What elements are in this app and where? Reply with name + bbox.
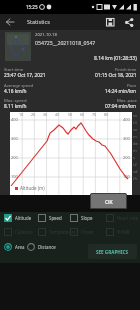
staticText: m: [133, 148, 137, 153]
staticText: 14:24 min/km: [105, 88, 137, 95]
button[interactable]: Altitude: [4, 214, 32, 222]
staticText: 10: [19, 112, 24, 117]
staticText: OK: [105, 198, 113, 205]
button[interactable]: %HRR: [106, 228, 130, 236]
staticText: 20: [31, 112, 36, 117]
staticText: Statistics: [27, 18, 50, 25]
button[interactable]: Distance: [27, 243, 56, 251]
button[interactable]: [125, 18, 134, 27]
staticText: Distance: [38, 244, 56, 250]
staticText: 400: [11, 117, 18, 122]
staticText: 70: [92, 112, 97, 117]
staticText: Finish time: [115, 67, 137, 73]
button[interactable]: Area: [4, 243, 25, 251]
button[interactable]: Power: [70, 228, 94, 236]
staticText: Cadence: [15, 229, 33, 235]
staticText: 100: [11, 174, 18, 179]
staticText: /h: [133, 176, 137, 181]
staticText: Slope: [81, 215, 93, 221]
staticText: se: [133, 127, 138, 132]
staticText: 40: [55, 112, 60, 117]
staticText: t2: [133, 162, 137, 167]
staticText: Pace: [127, 83, 137, 89]
staticText: 15:25: [26, 4, 38, 10]
staticText: 01:15 Oct 18, 2021: [95, 72, 137, 79]
button[interactable]: Cadence: [4, 228, 33, 236]
staticText: ss: [133, 113, 137, 118]
staticText: Altitude: [15, 215, 32, 221]
staticText: 60: [80, 112, 85, 117]
staticText: 400: [123, 117, 130, 122]
button[interactable]: Heart rate: [106, 214, 138, 222]
staticText: 4.16 km/h: [4, 88, 27, 95]
button[interactable]: [5, 32, 31, 61]
staticText: 200: [11, 155, 18, 160]
staticText: Max. speed: [4, 98, 27, 104]
staticText: 2021-10-18: [35, 32, 57, 38]
staticText: 200: [123, 155, 130, 160]
staticText: s: [133, 155, 135, 160]
staticText: Average speed: [4, 83, 34, 89]
button[interactable]: Slope: [70, 214, 93, 222]
staticText: Max. pace: [117, 98, 137, 104]
staticText: 300: [123, 136, 130, 141]
staticText: Area: [15, 244, 25, 250]
staticText: SEE GRAPHICS: [96, 249, 129, 255]
staticText: Altitude (m): [20, 185, 45, 191]
button[interactable]: OK: [90, 193, 127, 209]
staticText: t3: [133, 120, 137, 125]
staticText: %HRR: [117, 229, 130, 235]
staticText: Temperature: [49, 229, 76, 235]
button[interactable]: [4, 16, 16, 28]
staticText: de: [133, 141, 138, 146]
staticText: 8.11 km/h: [4, 103, 27, 110]
staticText: 23:47 Oct 17, 2021: [4, 72, 46, 79]
staticText: m: [133, 134, 137, 139]
staticText: 80: [104, 112, 109, 117]
staticText: 054725__20211018_0547: [35, 39, 96, 46]
button[interactable]: [106, 18, 115, 27]
staticText: Heart rate: [117, 215, 138, 221]
staticText: 50: [68, 112, 73, 117]
button[interactable]: Temperature: [38, 228, 76, 236]
staticText: 300: [11, 136, 18, 141]
staticText: Speed: [49, 215, 62, 221]
button[interactable]: SEE GRAPHICS: [88, 244, 137, 259]
staticText: Power: [81, 229, 94, 235]
staticText: 100: [123, 174, 130, 179]
staticText: 8.14 km (01:28:33): [94, 55, 137, 62]
staticText: sd: [133, 169, 138, 174]
button[interactable]: Speed: [38, 214, 62, 222]
staticText: 30: [43, 112, 48, 117]
staticText: Start time: [4, 67, 24, 73]
staticText: 07:04 min/km: [105, 103, 137, 110]
